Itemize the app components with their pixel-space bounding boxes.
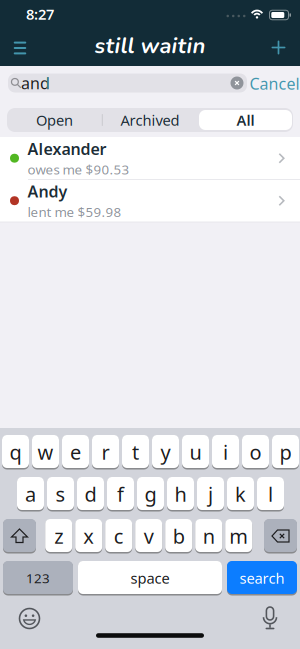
button[interactable]: x bbox=[75, 518, 102, 553]
button[interactable]: q bbox=[2, 434, 29, 469]
button[interactable]: n bbox=[195, 518, 222, 553]
button[interactable]: f bbox=[107, 476, 134, 511]
button[interactable]: s bbox=[47, 476, 74, 511]
staticText: x bbox=[83, 523, 94, 549]
button[interactable]: Shift bbox=[3, 518, 36, 553]
button[interactable]: w bbox=[32, 434, 59, 469]
staticText: and bbox=[21, 72, 50, 94]
button[interactable]: a bbox=[17, 476, 44, 511]
staticText: j bbox=[208, 481, 213, 507]
staticText: t bbox=[132, 439, 139, 465]
staticText: y bbox=[160, 439, 170, 465]
staticText: b bbox=[173, 523, 185, 549]
staticText: l bbox=[268, 481, 273, 507]
button[interactable]: k bbox=[227, 476, 254, 511]
button[interactable]: Open bbox=[7, 108, 101, 132]
staticText: w bbox=[37, 439, 53, 465]
staticText: s bbox=[55, 481, 65, 507]
button[interactable]: o bbox=[242, 434, 269, 469]
staticText: All bbox=[236, 110, 254, 130]
button[interactable]: All bbox=[198, 108, 292, 132]
button[interactable]: 123 bbox=[3, 560, 73, 595]
staticText: g bbox=[144, 481, 156, 507]
button[interactable]: Alexander bbox=[0, 137, 300, 179]
button[interactable]: m bbox=[225, 518, 252, 553]
button[interactable]: Add bbox=[267, 36, 289, 58]
button[interactable]: search bbox=[227, 560, 297, 595]
staticText: d bbox=[84, 481, 96, 507]
button[interactable]: Cancel bbox=[244, 72, 300, 94]
button[interactable]: b bbox=[165, 518, 192, 553]
button[interactable]: h bbox=[167, 476, 194, 511]
staticText: Open bbox=[36, 110, 73, 130]
staticText: q bbox=[9, 439, 21, 465]
staticText: z bbox=[54, 523, 63, 549]
staticText: e bbox=[70, 439, 81, 465]
button[interactable]: c bbox=[105, 518, 132, 553]
staticText: m bbox=[229, 523, 248, 549]
button[interactable]: Clear text bbox=[230, 76, 243, 89]
button[interactable]: space bbox=[78, 560, 222, 595]
button[interactable]: t bbox=[122, 434, 149, 469]
staticText: Andy bbox=[27, 181, 67, 202]
staticText: Alexander bbox=[27, 138, 106, 159]
staticText: owes me $90.53 bbox=[27, 160, 129, 178]
button[interactable]: v bbox=[135, 518, 162, 553]
staticText: lent me $59.98 bbox=[27, 203, 121, 221]
button[interactable]: j bbox=[197, 476, 224, 511]
staticText: i bbox=[223, 439, 228, 465]
staticText: Archived bbox=[120, 110, 179, 130]
staticText: k bbox=[235, 481, 246, 507]
button[interactable]: p bbox=[272, 434, 299, 469]
staticText: space bbox=[130, 568, 169, 588]
staticText: u bbox=[189, 439, 201, 465]
button[interactable]: Dictate bbox=[258, 606, 282, 630]
staticText: o bbox=[249, 439, 261, 465]
button[interactable]: z bbox=[45, 518, 72, 553]
staticText: 8:27 bbox=[26, 4, 54, 24]
staticText: a bbox=[25, 481, 36, 507]
staticText: n bbox=[203, 523, 215, 549]
button[interactable]: Andy bbox=[0, 179, 300, 222]
button[interactable]: r bbox=[92, 434, 119, 469]
button[interactable]: l bbox=[257, 476, 284, 511]
button[interactable]: d bbox=[77, 476, 104, 511]
staticText: r bbox=[101, 439, 109, 465]
staticText: h bbox=[174, 481, 186, 507]
button[interactable]: Archived bbox=[103, 108, 197, 132]
staticText: search bbox=[239, 568, 284, 588]
staticText: still waitin bbox=[94, 31, 205, 61]
button[interactable]: Menu bbox=[9, 38, 31, 58]
button[interactable]: Emoji bbox=[17, 606, 41, 630]
button[interactable]: g bbox=[137, 476, 164, 511]
button[interactable]: u bbox=[182, 434, 209, 469]
button[interactable]: y bbox=[152, 434, 179, 469]
staticText: c bbox=[114, 523, 124, 549]
staticText: f bbox=[117, 481, 124, 507]
staticText: p bbox=[279, 439, 291, 465]
button[interactable]: Delete bbox=[264, 518, 297, 553]
staticText: 123 bbox=[26, 569, 50, 587]
staticText: v bbox=[144, 523, 154, 549]
button[interactable]: i bbox=[212, 434, 239, 469]
button[interactable]: e bbox=[62, 434, 89, 469]
staticText: Cancel bbox=[249, 73, 299, 94]
